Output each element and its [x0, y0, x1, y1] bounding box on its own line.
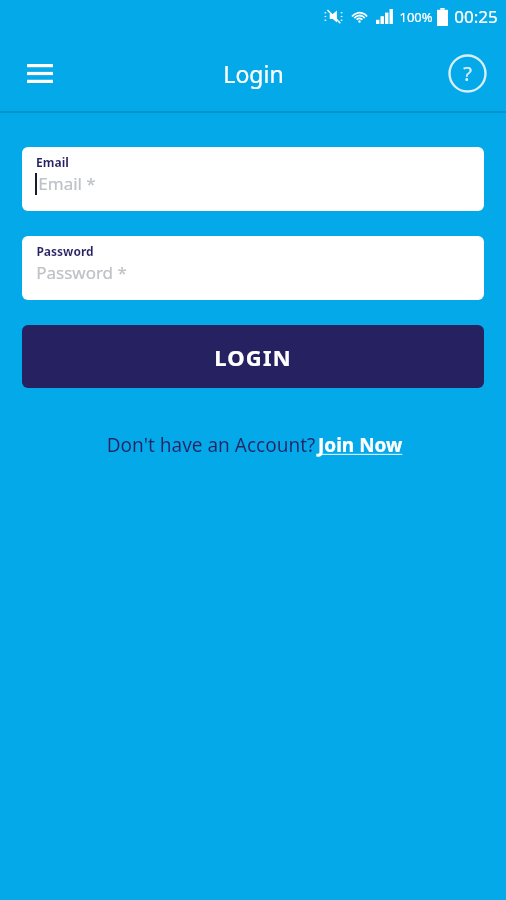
button[interactable]: Password: [22, 236, 484, 300]
staticText: Login: [223, 58, 284, 89]
button[interactable]: Join Now: [318, 432, 403, 458]
staticText: Email: [36, 154, 69, 170]
staticText: ?: [463, 60, 472, 87]
staticText: 00:25: [454, 5, 498, 28]
staticText: 100%: [399, 8, 433, 26]
staticText: Password: [36, 243, 94, 259]
staticText: Email *: [38, 172, 96, 195]
staticText: Join Now: [318, 432, 403, 458]
button[interactable]: Open navigation menu: [14, 47, 66, 99]
staticText: Password *: [36, 261, 127, 284]
button[interactable]: Email: [22, 147, 484, 211]
button[interactable]: Help: [442, 48, 492, 98]
staticText: LOGIN: [214, 342, 292, 372]
button[interactable]: LOGIN: [22, 325, 484, 388]
staticText: Don't have an Account?: [104, 432, 318, 458]
